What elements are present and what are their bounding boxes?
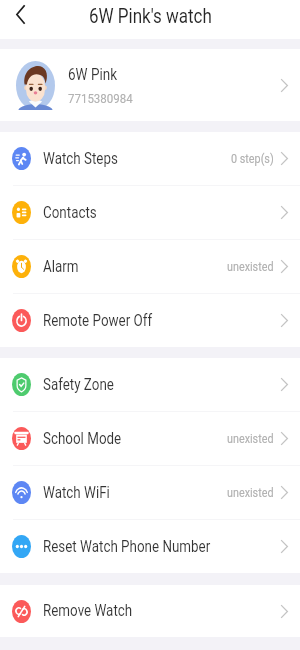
staticText: Remove Watch — [43, 602, 133, 620]
button[interactable]: Back — [0, 0, 40, 29]
staticText: Watch WiFi — [43, 484, 110, 502]
staticText: Reset Watch Phone Number — [43, 538, 211, 556]
staticText: 6W Pink — [68, 65, 118, 83]
staticText: unexisted — [227, 485, 274, 500]
button[interactable]: Safety Zone — [0, 358, 300, 411]
staticText: 0 step(s) — [231, 151, 274, 166]
staticText: unexisted — [227, 431, 274, 446]
staticText: 6W Pink's watch — [89, 4, 212, 28]
staticText: Watch Steps — [43, 150, 118, 168]
staticText: School Mode — [43, 430, 122, 448]
staticText: Remote Power Off — [43, 312, 153, 330]
button[interactable]: Remove Watch — [0, 585, 300, 637]
button[interactable]: Reset Watch Phone Number — [0, 520, 300, 573]
staticText: Contacts — [43, 204, 97, 222]
button[interactable]: 6W Pink — [0, 49, 300, 121]
button[interactable]: Watch WiFi — [0, 466, 300, 519]
button[interactable]: School Mode — [0, 412, 300, 465]
button[interactable]: Alarm — [0, 240, 300, 293]
button[interactable]: Watch Steps — [0, 132, 300, 185]
staticText: 7715380984 — [68, 90, 133, 105]
button[interactable]: Remote Power Off — [0, 294, 300, 347]
staticText: unexisted — [227, 259, 274, 274]
staticText: Safety Zone — [43, 376, 114, 394]
staticText: Alarm — [43, 258, 79, 276]
button[interactable]: Contacts — [0, 186, 300, 239]
